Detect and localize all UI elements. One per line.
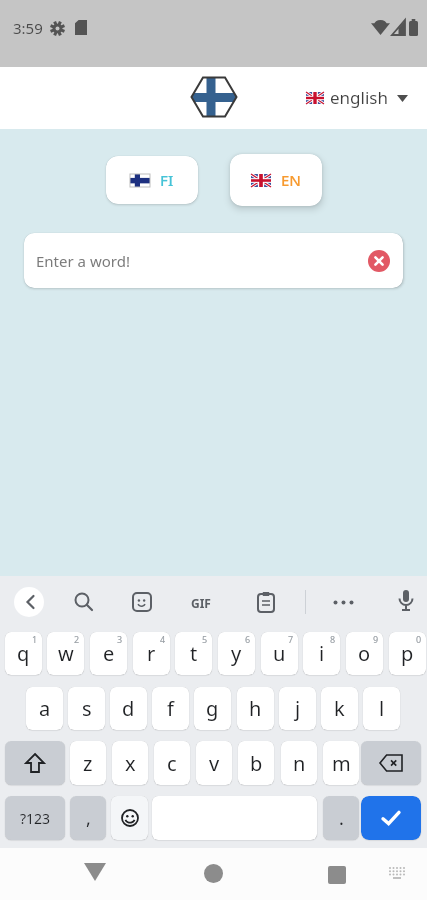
staticText: q xyxy=(17,640,30,667)
button[interactable]: english xyxy=(300,81,415,115)
button[interactable]: t xyxy=(175,632,212,675)
staticText: 8 xyxy=(330,633,336,645)
staticText: Enter a word! xyxy=(36,251,130,271)
staticText: ?123 xyxy=(20,809,51,828)
staticText: y xyxy=(231,640,242,667)
staticText: , xyxy=(86,806,91,831)
staticText: 1 xyxy=(32,633,38,645)
staticText: EN xyxy=(281,170,301,190)
staticText: z xyxy=(83,750,93,777)
button[interactable]: GIF xyxy=(191,595,211,611)
button[interactable] xyxy=(388,866,406,879)
button[interactable] xyxy=(258,592,274,612)
staticText: c xyxy=(167,750,177,777)
button[interactable]: EN xyxy=(230,154,322,206)
staticText: i xyxy=(319,640,325,667)
button[interactable]: , xyxy=(70,796,106,840)
button[interactable]: m xyxy=(323,741,359,785)
button[interactable] xyxy=(333,600,354,605)
staticText: j xyxy=(295,695,301,722)
staticText: g xyxy=(206,695,219,722)
staticText: e xyxy=(103,640,115,667)
staticText: p xyxy=(401,640,414,667)
staticText: s xyxy=(82,695,92,722)
button[interactable]: l xyxy=(363,687,400,730)
button[interactable] xyxy=(133,593,151,611)
button[interactable]: e xyxy=(90,632,127,675)
button[interactable]: k xyxy=(321,687,358,730)
button[interactable]: b xyxy=(238,741,274,785)
button[interactable] xyxy=(74,592,94,612)
staticText: 6 xyxy=(245,633,251,645)
staticText: english xyxy=(330,86,388,109)
button[interactable]: j xyxy=(279,687,316,730)
staticText: d xyxy=(122,695,135,722)
staticText: a xyxy=(39,695,51,722)
staticText: u xyxy=(273,640,286,667)
button[interactable] xyxy=(361,741,421,785)
button[interactable] xyxy=(204,864,223,883)
staticText: h xyxy=(249,695,262,722)
staticText: 3 xyxy=(117,633,123,645)
button[interactable]: r xyxy=(133,632,170,675)
button[interactable]: w xyxy=(47,632,84,675)
staticText: 5 xyxy=(202,633,208,645)
staticText: v xyxy=(209,750,220,777)
staticText: l xyxy=(379,695,385,722)
button[interactable] xyxy=(111,796,148,840)
button[interactable]: x xyxy=(112,741,148,785)
staticText: 7 xyxy=(288,633,294,645)
staticText: w xyxy=(58,640,74,667)
button[interactable]: d xyxy=(110,687,147,730)
button[interactable]: z xyxy=(70,741,106,785)
button[interactable]: i xyxy=(303,632,340,675)
button[interactable]: . xyxy=(323,796,359,840)
staticText: b xyxy=(250,750,263,777)
button[interactable] xyxy=(361,796,421,840)
button[interactable]: c xyxy=(154,741,190,785)
button[interactable]: y xyxy=(218,632,255,675)
staticText: 9 xyxy=(373,633,379,645)
button[interactable]: h xyxy=(237,687,274,730)
staticText: m xyxy=(332,750,351,777)
button[interactable]: o xyxy=(346,632,383,675)
staticText: f xyxy=(167,695,174,722)
button[interactable]: ?123 xyxy=(5,796,65,840)
button[interactable]: v xyxy=(196,741,232,785)
button[interactable] xyxy=(398,590,414,614)
button[interactable] xyxy=(84,863,106,881)
staticText: k xyxy=(334,695,345,722)
staticText: r xyxy=(147,640,156,667)
button[interactable]: f xyxy=(152,687,189,730)
button[interactable]: g xyxy=(194,687,231,730)
button[interactable] xyxy=(14,587,44,617)
staticText: . xyxy=(339,806,344,831)
button[interactable]: a xyxy=(26,687,63,730)
button[interactable]: q xyxy=(5,632,42,675)
button[interactable]: s xyxy=(68,687,105,730)
button[interactable] xyxy=(5,741,65,785)
staticText: 4 xyxy=(160,633,166,645)
button[interactable] xyxy=(328,866,346,884)
staticText: 0 xyxy=(416,633,422,645)
button[interactable]: u xyxy=(261,632,298,675)
button[interactable] xyxy=(368,250,390,272)
staticText: FI xyxy=(160,170,174,190)
button[interactable]: FI xyxy=(106,156,198,204)
button[interactable]: p xyxy=(389,632,426,675)
staticText: o xyxy=(358,640,371,667)
staticText: n xyxy=(293,750,306,777)
staticText: t xyxy=(190,640,198,667)
button[interactable]: n xyxy=(281,741,317,785)
staticText: 2 xyxy=(74,633,80,645)
staticText: x xyxy=(125,750,136,777)
button[interactable]: Enter a word! xyxy=(24,233,403,288)
staticText: 3:59 xyxy=(13,18,43,38)
